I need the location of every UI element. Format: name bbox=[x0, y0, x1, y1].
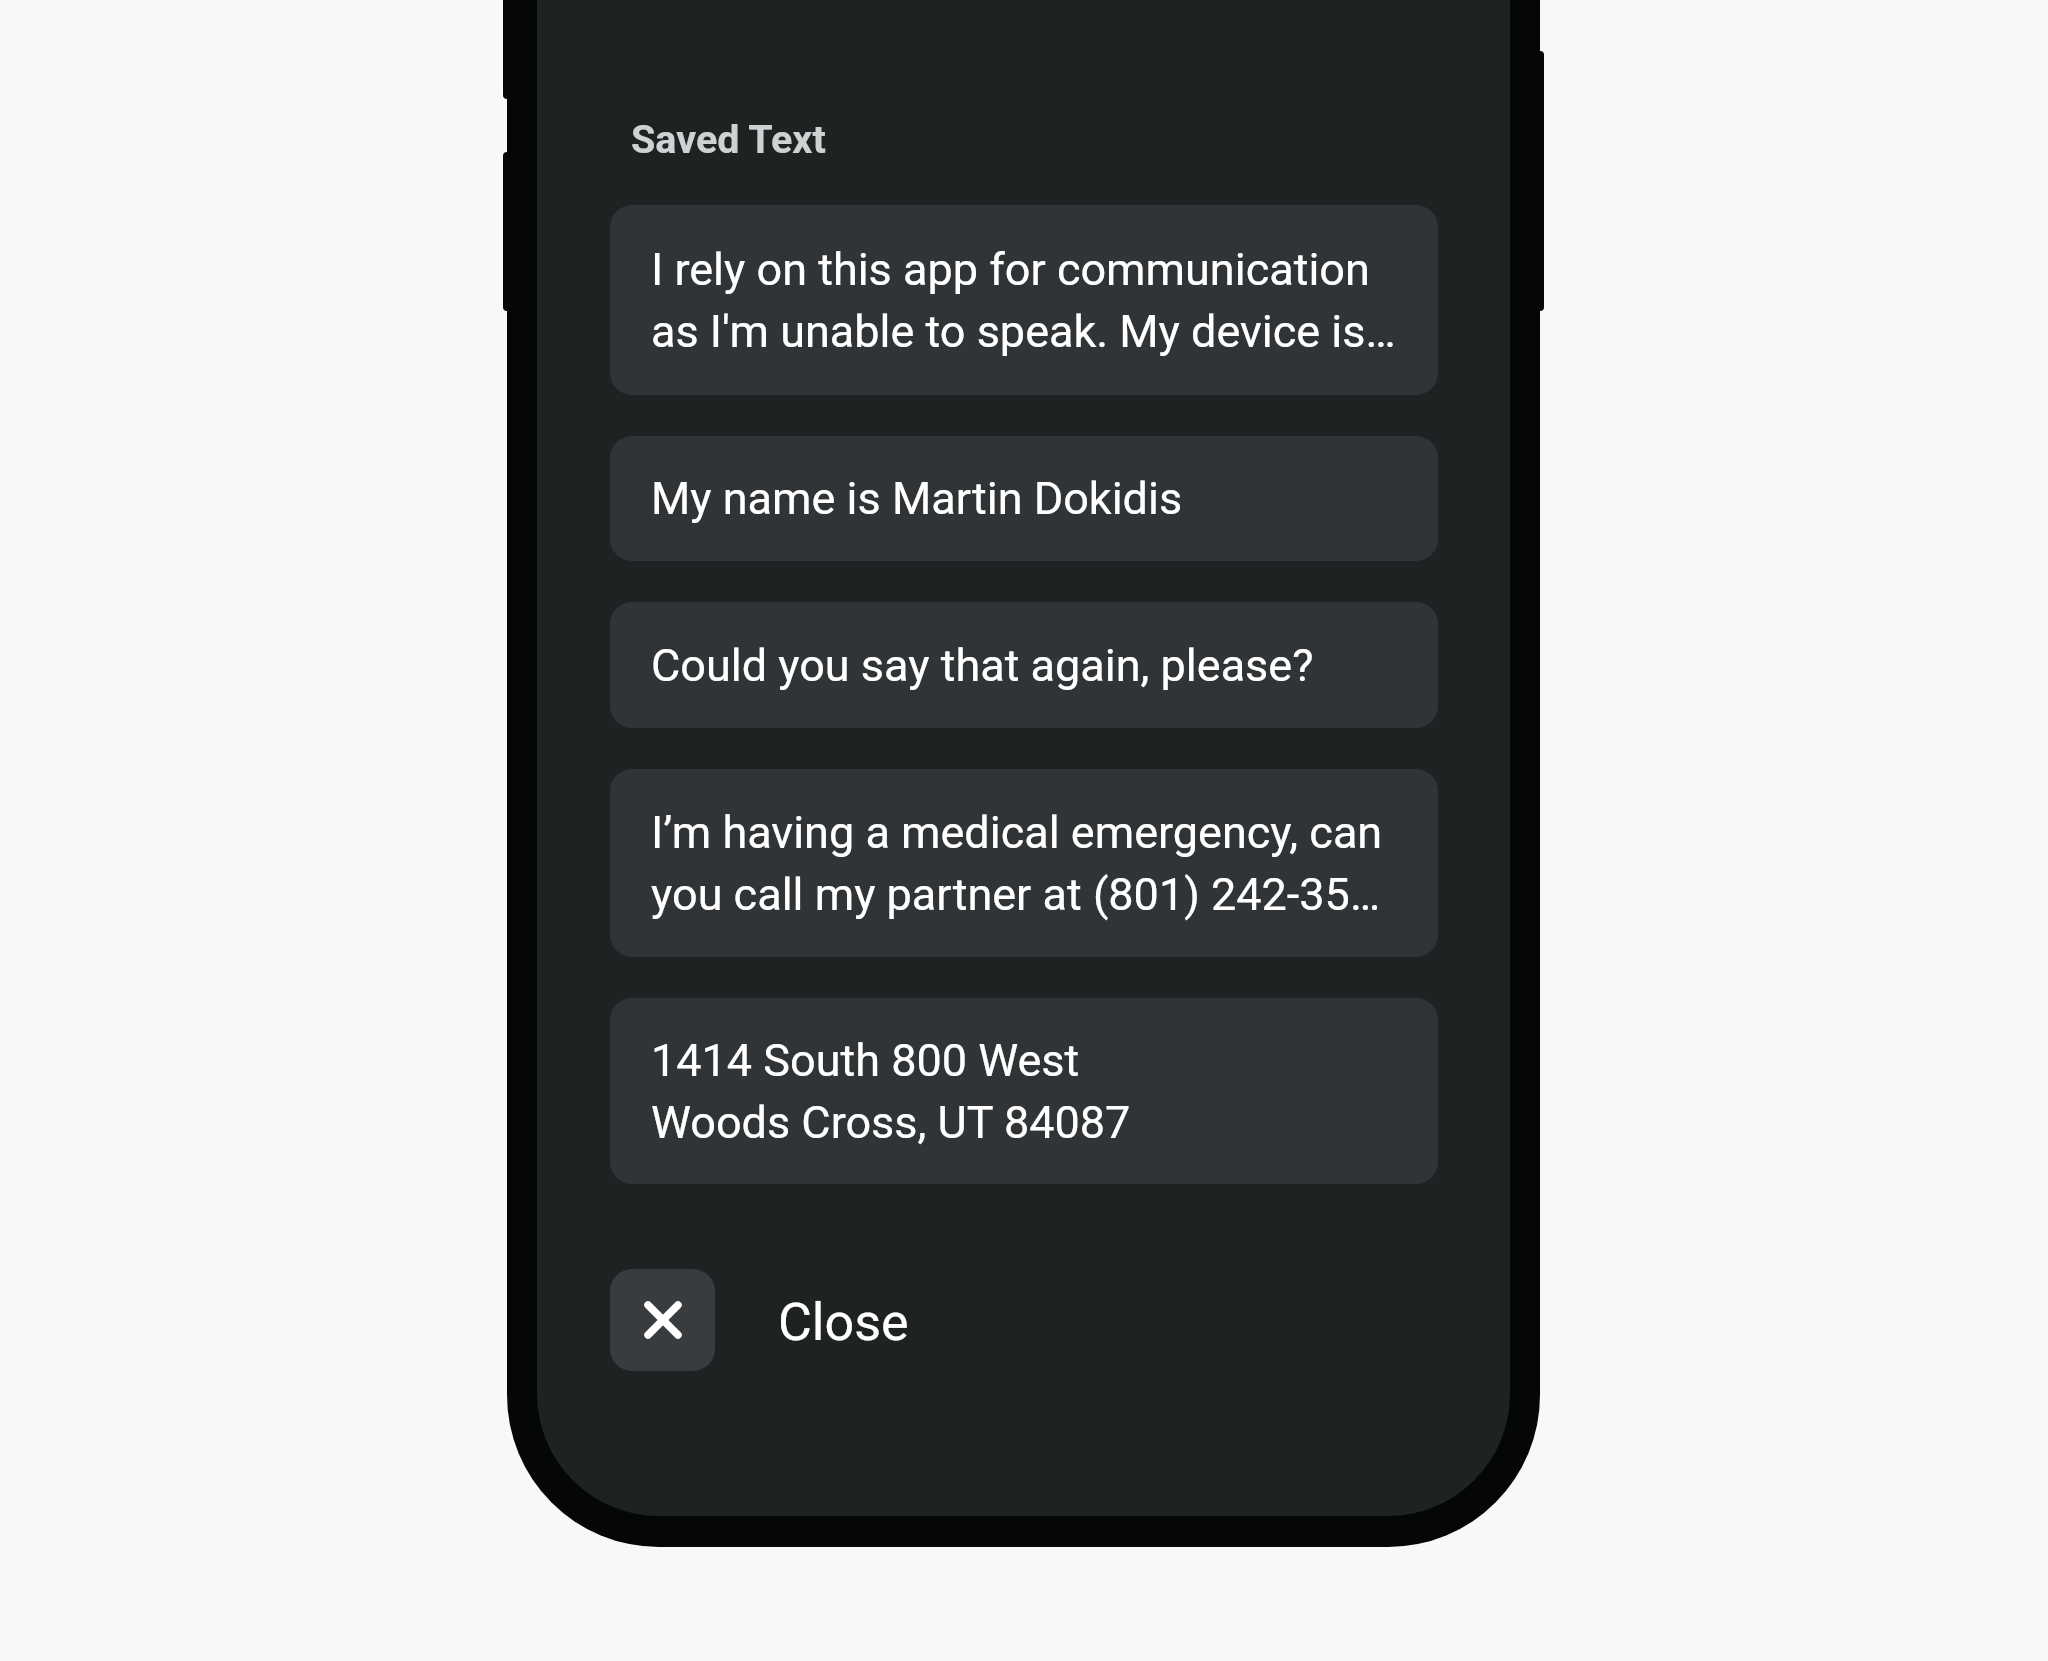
staticText: Could you say that again, please? bbox=[651, 639, 1314, 692]
staticText: I rely on this app for communication as … bbox=[651, 243, 1396, 358]
staticText: I’m having a medical emergency, can you … bbox=[651, 806, 1383, 921]
button[interactable]: Could you say that again, please? bbox=[610, 602, 1438, 728]
staticText: My name is Martin Dokidis bbox=[651, 472, 1183, 525]
button[interactable]: I rely on this app for communication as … bbox=[610, 205, 1438, 395]
staticText: 1414 South 800 West Woods Cross, UT 8408… bbox=[651, 1034, 1131, 1149]
staticText: Close bbox=[778, 1292, 909, 1353]
staticText: Saved Text bbox=[631, 116, 826, 162]
other: Close bbox=[610, 1269, 715, 1371]
button[interactable]: My name is Martin Dokidis bbox=[610, 436, 1438, 561]
button[interactable]: I’m having a medical emergency, can you … bbox=[610, 769, 1438, 957]
button[interactable]: 1414 South 800 West Woods Cross, UT 8408… bbox=[610, 998, 1438, 1184]
button[interactable]: Close bbox=[610, 1269, 1030, 1371]
